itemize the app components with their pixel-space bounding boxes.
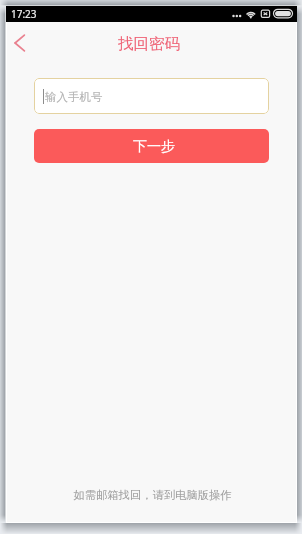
staticText: 17:23 (11, 7, 37, 21)
staticText: 输入手机号 (45, 90, 103, 104)
staticText: 找回密码 (118, 34, 180, 54)
button[interactable]: 输入手机号 (34, 78, 269, 114)
staticText: 如需邮箱找回，请到电脑版操作 (8, 488, 297, 502)
button[interactable]: 下一步 (34, 129, 269, 163)
staticText: 下一步 (133, 138, 175, 156)
button[interactable]: 返回 (7, 22, 45, 64)
